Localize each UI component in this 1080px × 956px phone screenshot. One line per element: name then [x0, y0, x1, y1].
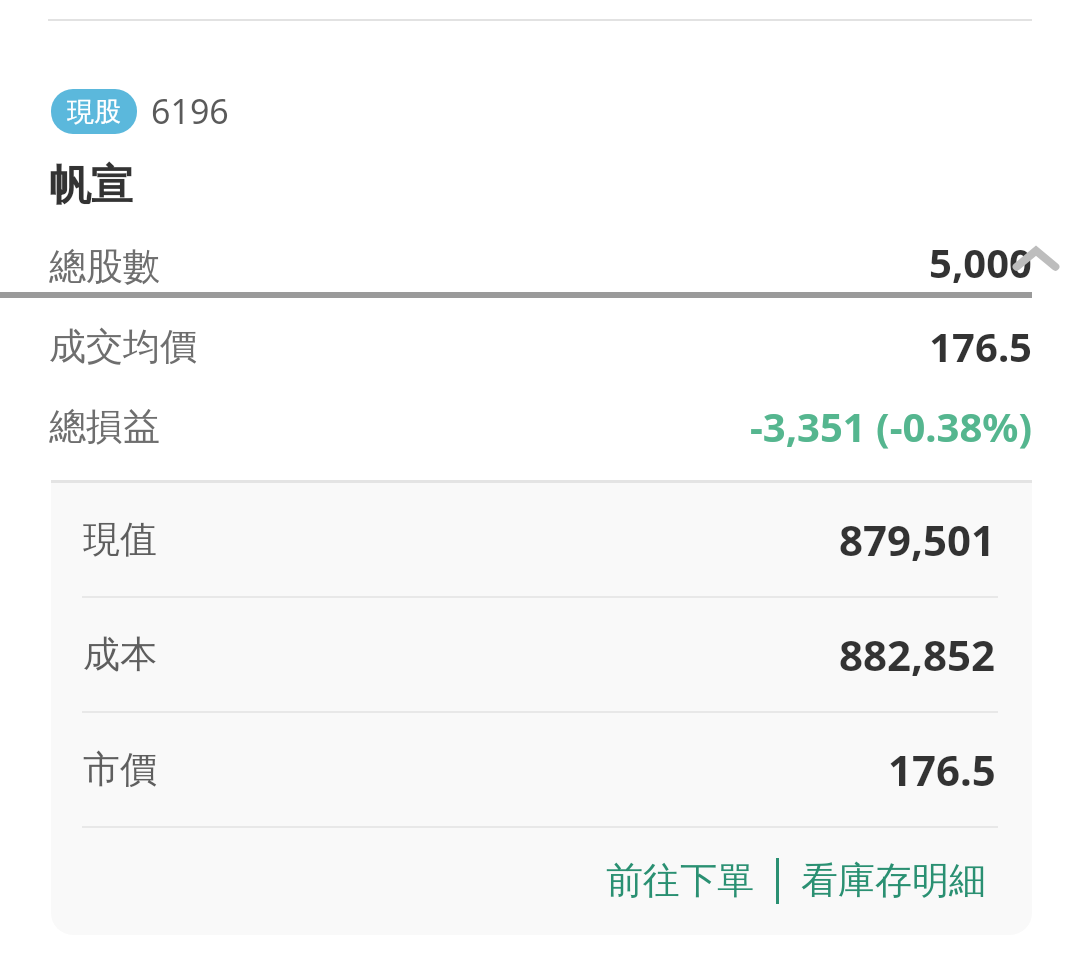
staticText: 總損益 [49, 403, 160, 450]
staticText: 帆宣 [49, 159, 133, 212]
button[interactable]: 現股 [51, 88, 229, 134]
staticText: 看庫存明細 [801, 857, 986, 904]
button[interactable]: 現值 [51, 483, 1032, 596]
staticText: 879,501 [839, 511, 996, 568]
staticText: 成交均價 [49, 323, 197, 370]
staticText: -3,351 (-0.38%) [750, 399, 1032, 453]
staticText: 成本 [83, 631, 157, 678]
button[interactable]: 前往下單 [596, 849, 764, 912]
staticText: 現值 [83, 516, 157, 563]
staticText: 6196 [151, 88, 229, 134]
staticText: 882,852 [839, 626, 996, 683]
button[interactable]: Collapse [1004, 227, 1068, 291]
button[interactable]: 成交均價 [0, 306, 1080, 386]
button[interactable]: 看庫存明細 [791, 849, 996, 912]
button[interactable]: 成本 [51, 598, 1032, 711]
staticText: 前往下單 [606, 857, 754, 904]
staticText: 176.5 [929, 319, 1032, 373]
staticText: 現股 [67, 95, 121, 129]
button[interactable]: 總損益 [0, 386, 1080, 466]
staticText: 市價 [83, 746, 157, 793]
button[interactable]: 市價 [51, 713, 1032, 826]
staticText: 總股數 [49, 243, 160, 290]
staticText: 5,000 [929, 235, 1032, 289]
button[interactable]: 總股數 [0, 226, 1080, 306]
staticText: 176.5 [888, 741, 996, 798]
